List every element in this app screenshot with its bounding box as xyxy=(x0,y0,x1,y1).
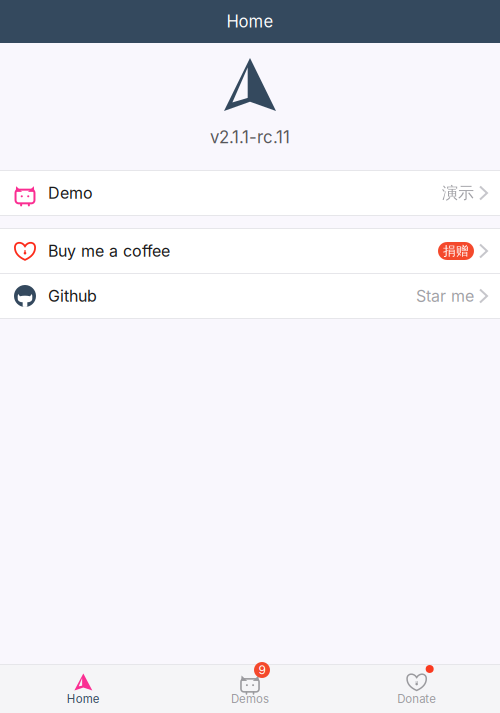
staticText: Demo xyxy=(48,183,93,203)
button[interactable]: Demo xyxy=(0,171,500,215)
staticText: Github xyxy=(48,286,97,306)
staticText: Demos xyxy=(231,692,269,706)
staticText: Home xyxy=(226,11,273,32)
staticText: v2.1.1-rc.11 xyxy=(210,127,290,147)
button[interactable]: 9 xyxy=(167,665,333,713)
button[interactable]: Home xyxy=(0,665,167,713)
staticText: 演示 xyxy=(442,183,474,203)
staticText: Home xyxy=(67,692,100,706)
button[interactable]: Donate xyxy=(333,665,500,713)
button[interactable]: Github xyxy=(0,274,500,318)
staticText: Star me xyxy=(416,286,474,306)
button[interactable]: Buy me a coffee xyxy=(0,229,500,273)
staticText: Donate xyxy=(397,692,436,706)
staticText: Buy me a coffee xyxy=(48,241,170,261)
staticText: 9 xyxy=(258,663,265,677)
staticText: 捐赠 xyxy=(443,243,469,259)
